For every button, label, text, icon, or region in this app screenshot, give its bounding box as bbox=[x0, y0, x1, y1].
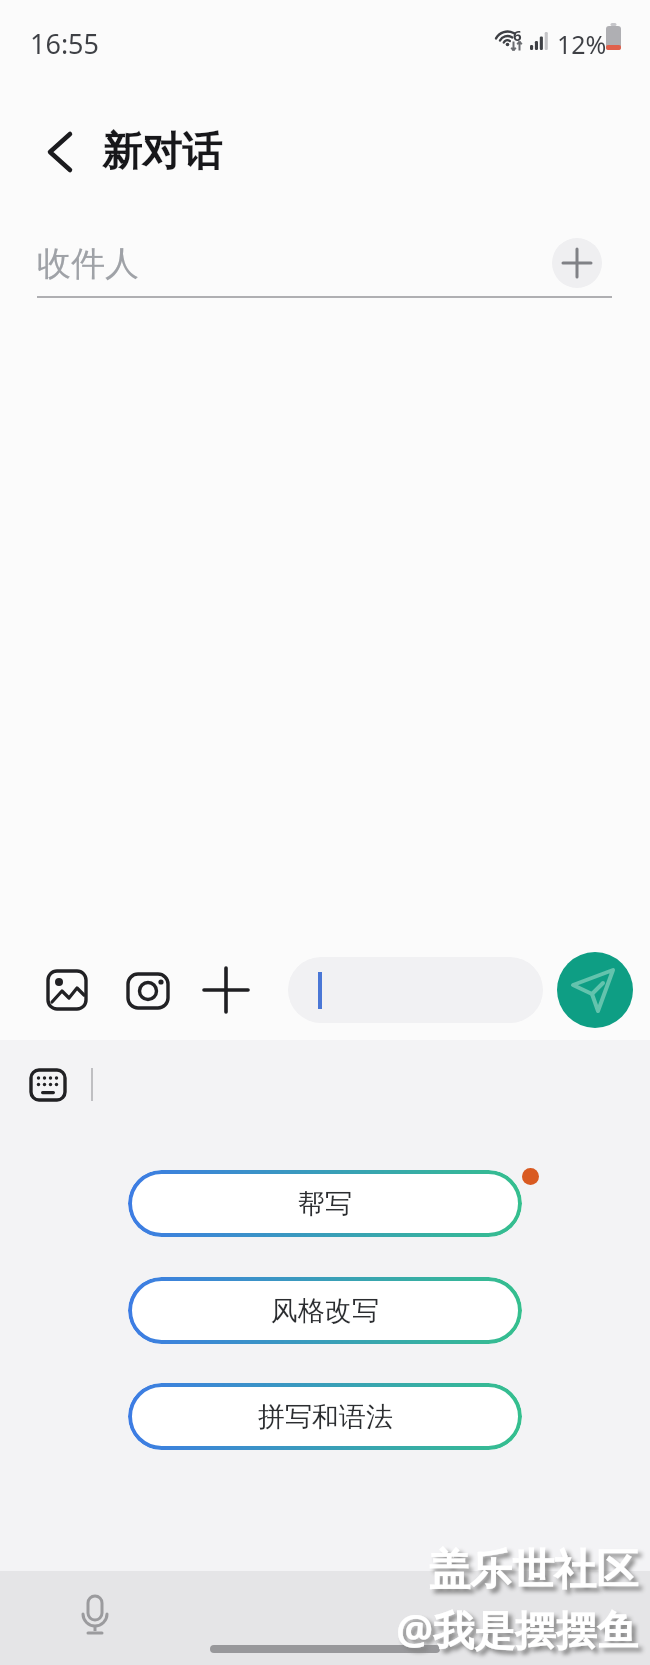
button[interactable] bbox=[121, 963, 175, 1017]
button[interactable] bbox=[24, 1061, 72, 1109]
button[interactable] bbox=[288, 957, 543, 1023]
button[interactable] bbox=[71, 1592, 119, 1640]
button[interactable] bbox=[30, 122, 90, 182]
button[interactable] bbox=[552, 238, 602, 288]
staticText: @我是摆摆鱼 bbox=[0, 1601, 638, 1657]
button[interactable] bbox=[199, 963, 253, 1017]
staticText: 收件人 bbox=[37, 242, 139, 285]
staticText: 新对话 bbox=[102, 126, 222, 176]
staticText: 6 bbox=[513, 25, 522, 45]
staticText: 拼写和语法 bbox=[258, 1400, 393, 1434]
button[interactable] bbox=[40, 963, 94, 1017]
button[interactable]: 拼写和语法 bbox=[128, 1383, 522, 1450]
staticText: 帮写 bbox=[298, 1187, 352, 1221]
button[interactable]: 风格改写 bbox=[128, 1277, 522, 1344]
button[interactable]: 帮写 bbox=[128, 1170, 522, 1237]
staticText: 12% bbox=[557, 27, 607, 61]
staticText: 16:55 bbox=[30, 25, 100, 62]
button[interactable] bbox=[557, 952, 633, 1028]
staticText: 风格改写 bbox=[271, 1294, 379, 1328]
staticText: 盖乐世社区 bbox=[0, 1544, 638, 1597]
